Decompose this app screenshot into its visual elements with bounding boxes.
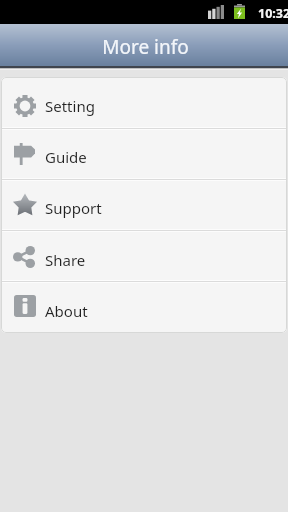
button[interactable]: Guide	[1, 128, 287, 179]
button[interactable]: Setting	[1, 77, 287, 128]
button[interactable]: About	[1, 282, 287, 333]
button[interactable]: Support	[1, 179, 287, 230]
staticText: Share	[45, 250, 86, 270]
button[interactable]: Share	[1, 231, 287, 282]
staticText: About	[45, 301, 88, 321]
staticText: More info	[102, 34, 189, 60]
staticText: Support	[45, 198, 102, 218]
staticText: Setting	[45, 96, 95, 116]
staticText: Guide	[45, 147, 87, 167]
staticText: 10:32	[258, 5, 288, 22]
